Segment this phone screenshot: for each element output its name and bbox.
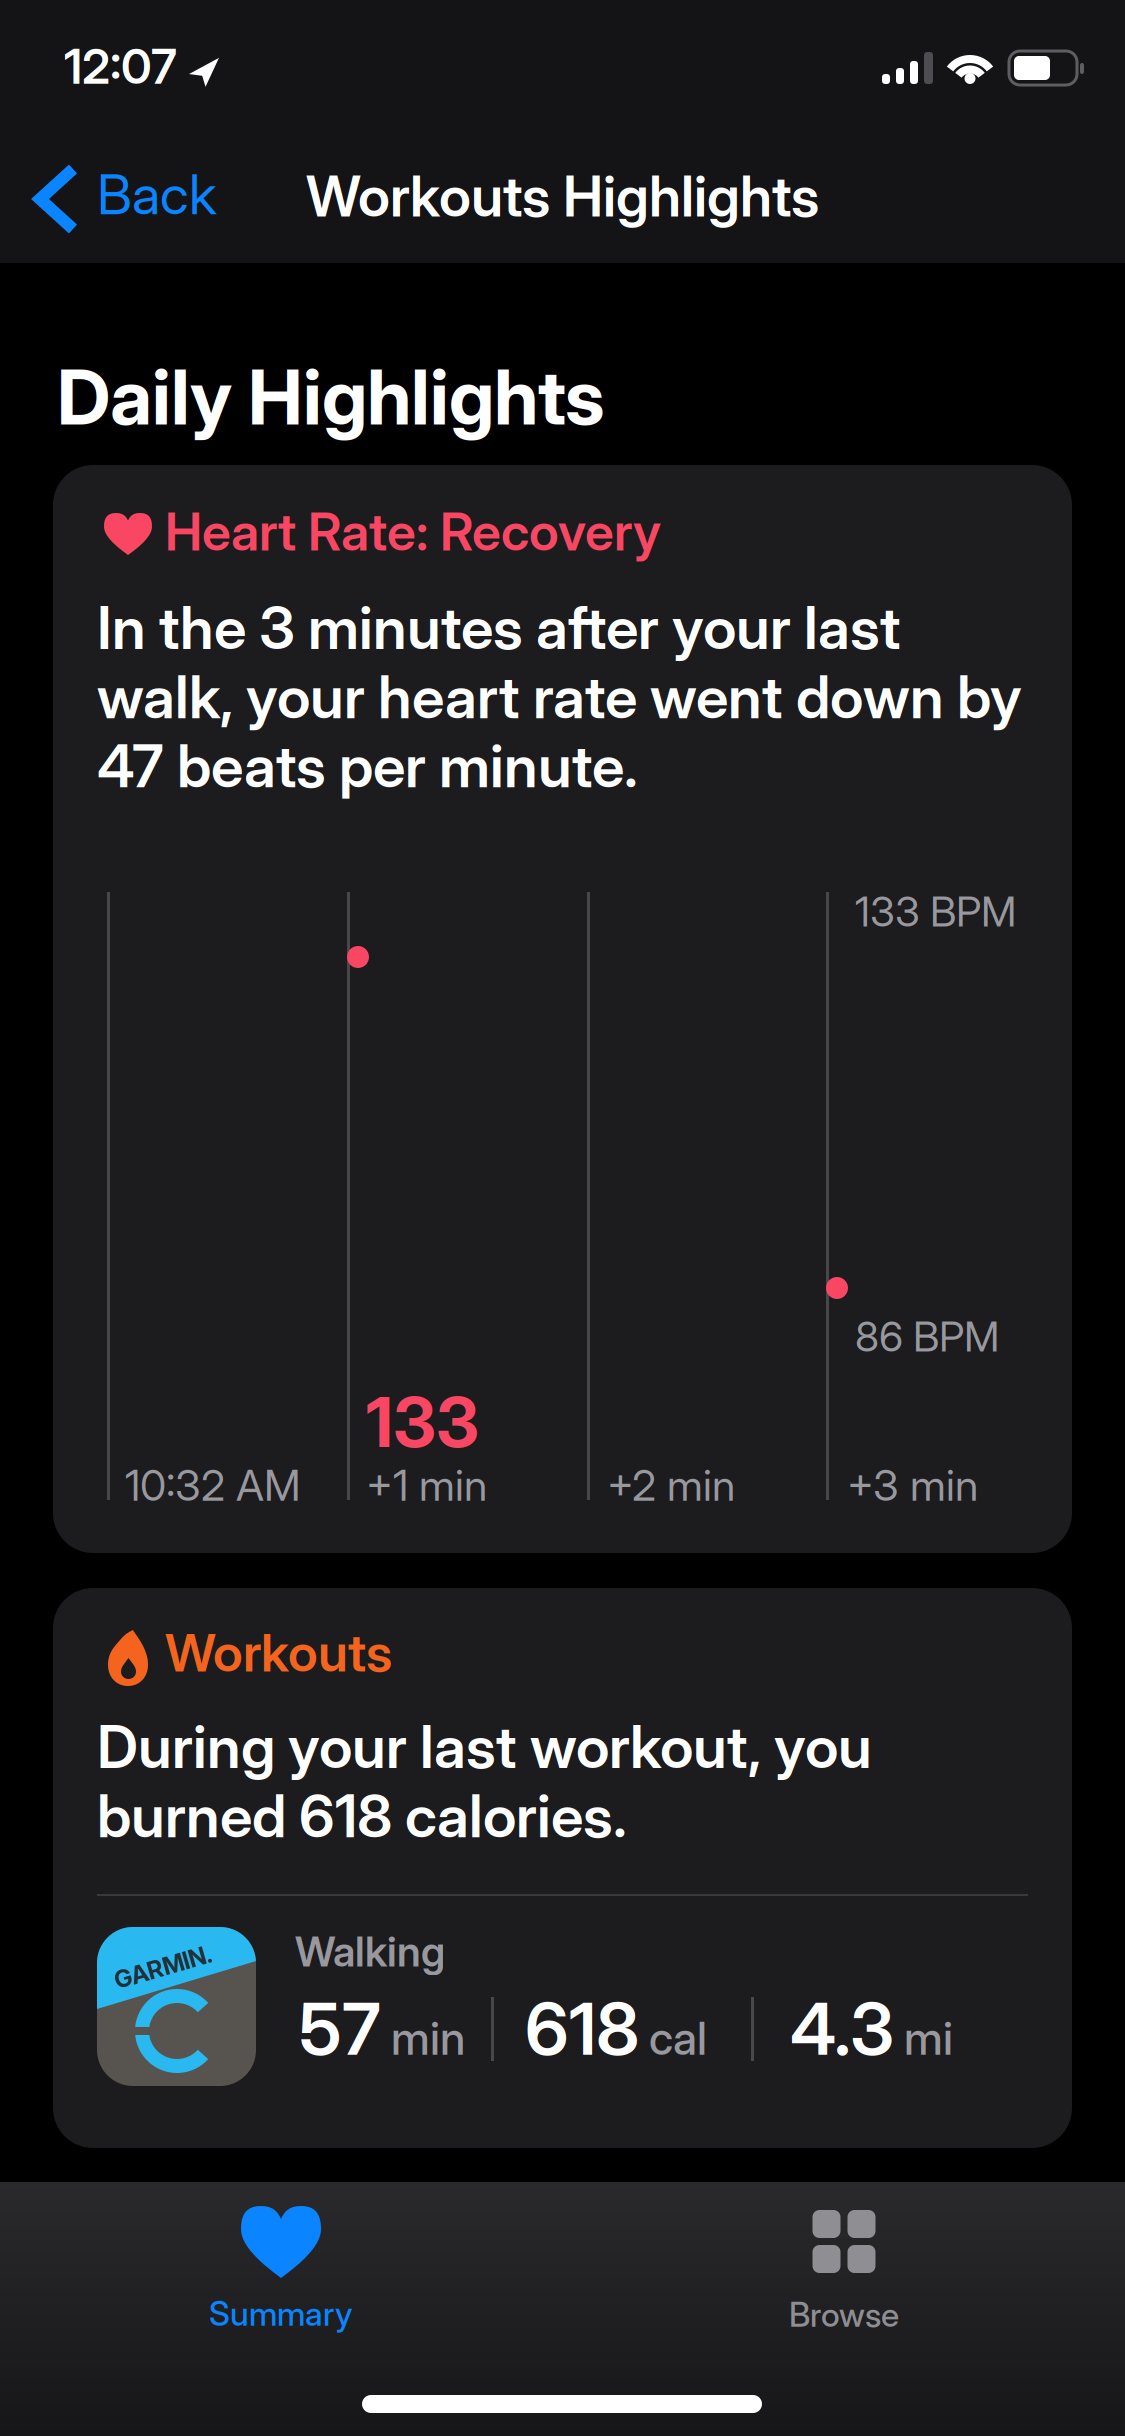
staticText: 86 BPM (855, 1312, 999, 1361)
staticText: Walking (295, 1927, 445, 1976)
staticText: In the 3 minutes after your last walk, y… (97, 593, 1022, 801)
staticText: Workouts (165, 1622, 392, 1683)
staticText: 57 (299, 1986, 381, 2071)
staticText: 133 BPM (855, 887, 1016, 936)
staticText: +2 min (607, 1460, 735, 1510)
button[interactable]: Heart Rate: Recovery (53, 465, 1072, 1553)
staticText: Workouts Highlights (306, 163, 819, 229)
staticText: +1 min (366, 1460, 487, 1510)
staticText: 4.3 (790, 1986, 894, 2071)
staticText: 618 (525, 1986, 639, 2071)
staticText: 10:32 AM (125, 1460, 301, 1510)
staticText: Back (97, 162, 217, 226)
staticText: +3 min (847, 1460, 978, 1510)
staticText: min (391, 2011, 465, 2065)
button[interactable]: Back (0, 120, 177, 184)
staticText: Daily Highlights (57, 352, 605, 442)
staticText: Heart Rate: Recovery (165, 501, 661, 562)
button[interactable]: Workouts (53, 1588, 1072, 2148)
button[interactable]: Summary (131, 2206, 431, 2333)
staticText: cal (649, 2011, 707, 2065)
staticText: During your last workout, you burned 618… (97, 1712, 872, 1850)
staticText: 133 (366, 1381, 479, 1463)
staticText: Browse (789, 2295, 899, 2334)
staticText: mi (904, 2011, 953, 2065)
staticText: Summary (209, 2294, 353, 2333)
staticText: 12:07 (64, 38, 177, 95)
staticText: GARMIN. (113, 1953, 213, 1981)
button[interactable]: Browse (694, 2210, 994, 2334)
